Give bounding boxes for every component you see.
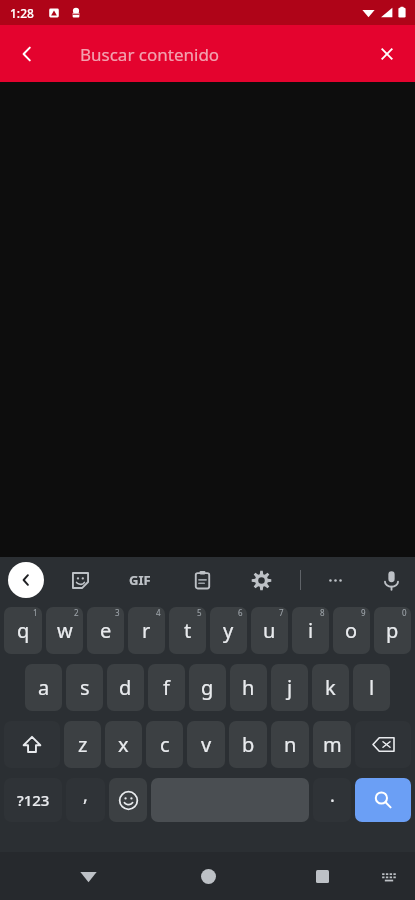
button[interactable]: Collapse toolbar (8, 562, 44, 598)
button[interactable]: p (374, 607, 411, 654)
button[interactable]: y (210, 607, 247, 654)
staticText: l (369, 674, 375, 701)
staticText: , (83, 783, 88, 808)
staticText: 1:28 (10, 5, 34, 21)
button[interactable]: l (353, 664, 390, 711)
button[interactable]: Search (355, 778, 411, 822)
staticText: 5 (197, 607, 202, 618)
staticText: c (160, 731, 170, 758)
staticText: e (100, 617, 112, 644)
button[interactable]: k (312, 664, 349, 711)
button[interactable]: Back (65, 853, 111, 899)
staticText: q (17, 617, 30, 644)
staticText: y (223, 617, 234, 644)
button[interactable]: s (66, 664, 103, 711)
button[interactable]: w (46, 607, 83, 654)
staticText: n (284, 731, 297, 758)
staticText: Buscar contenido (80, 43, 220, 66)
button[interactable]: . (313, 778, 351, 822)
staticText: u (263, 617, 276, 644)
staticText: i (308, 617, 314, 644)
button[interactable]: Back (4, 31, 50, 77)
staticText: 8 (320, 607, 325, 618)
button[interactable]: f (148, 664, 185, 711)
button[interactable]: Home (185, 853, 231, 899)
staticText: f (163, 674, 170, 701)
staticText: 7 (279, 607, 284, 618)
staticText: a (38, 674, 50, 701)
staticText: 4 (156, 607, 161, 618)
button[interactable]: h (230, 664, 267, 711)
button[interactable]: z (64, 721, 101, 768)
button[interactable]: q (4, 607, 42, 654)
button[interactable]: g (189, 664, 226, 711)
button[interactable]: c (146, 721, 183, 768)
staticText: 3 (115, 607, 120, 618)
staticText: 6 (238, 607, 243, 618)
button[interactable]: a (25, 664, 62, 711)
staticText: g (201, 674, 214, 701)
staticText: o (345, 617, 358, 644)
button[interactable]: Clipboard (183, 561, 221, 599)
button[interactable]: Emoji (109, 778, 147, 822)
staticText: 9 (361, 607, 366, 618)
staticText: t (184, 617, 192, 644)
button[interactable]: ?123 (4, 778, 62, 822)
button[interactable]: n (271, 721, 309, 768)
button[interactable]: More options (316, 561, 354, 599)
button[interactable]: Stickers (61, 561, 99, 599)
button[interactable]: , (66, 778, 105, 822)
button[interactable]: Voice input (372, 561, 410, 599)
staticText: h (242, 674, 255, 701)
button[interactable]: x (105, 721, 142, 768)
staticText: 2 (74, 607, 79, 618)
staticText: v (201, 731, 212, 758)
button[interactable]: u (251, 607, 288, 654)
staticText: b (242, 731, 255, 758)
button[interactable]: Buscar contenido (56, 29, 359, 79)
button[interactable]: d (107, 664, 144, 711)
staticText: GIF (129, 571, 151, 589)
button[interactable]: Clear search (365, 32, 409, 76)
button[interactable]: r (128, 607, 165, 654)
button[interactable]: Keyboard settings (242, 561, 280, 599)
button[interactable]: o (333, 607, 370, 654)
staticText: ?123 (17, 790, 50, 810)
staticText: r (142, 617, 151, 644)
button[interactable]: j (271, 664, 308, 711)
staticText: k (325, 674, 336, 701)
staticText: j (287, 674, 293, 701)
button[interactable]: Change keyboard (369, 856, 409, 896)
staticText: . (330, 783, 335, 808)
button[interactable]: Recent apps (299, 853, 345, 899)
button[interactable]: Backspace (355, 721, 411, 768)
button[interactable]: GIF (121, 561, 159, 599)
staticText: d (119, 674, 132, 701)
button[interactable]: e (87, 607, 124, 654)
staticText: m (323, 731, 342, 758)
button[interactable]: i (292, 607, 329, 654)
button[interactable]: b (229, 721, 267, 768)
staticText: x (118, 731, 129, 758)
button[interactable]: m (313, 721, 351, 768)
staticText: z (78, 731, 88, 758)
button[interactable]: Shift (4, 721, 60, 768)
staticText: p (386, 617, 399, 644)
button[interactable]: v (187, 721, 225, 768)
staticText: 0 (402, 607, 407, 618)
button[interactable]: t (169, 607, 206, 654)
staticText: 1 (33, 607, 38, 618)
staticText: w (57, 617, 73, 644)
staticText: s (80, 674, 90, 701)
